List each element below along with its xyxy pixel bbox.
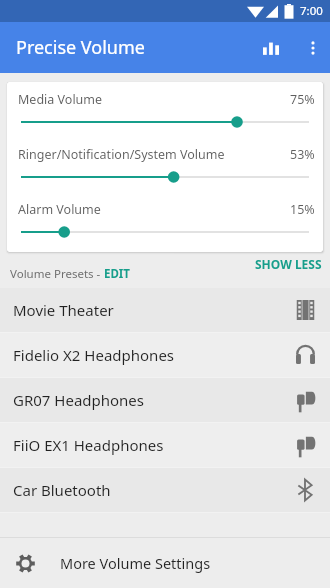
button[interactable]: More options xyxy=(293,28,330,68)
staticText: Media Volume xyxy=(18,91,290,108)
button[interactable]: Statistics xyxy=(249,26,293,70)
button[interactable]: EDIT xyxy=(104,266,130,282)
staticText: Ringer/Notification/System Volume xyxy=(18,146,290,163)
staticText: Movie Theater xyxy=(13,300,114,320)
staticText: Car Bluetooth xyxy=(13,480,111,500)
staticText: GR07 Headphones xyxy=(13,390,145,410)
staticText: 15% xyxy=(290,201,315,218)
button[interactable]: GR07 Headphones xyxy=(0,378,330,422)
button[interactable] xyxy=(21,170,309,184)
button[interactable]: Movie Theater xyxy=(0,288,330,332)
staticText: Volume Presets - xyxy=(10,266,104,282)
staticText: Precise Volume xyxy=(16,35,145,60)
button[interactable]: FiiO EX1 Headphones xyxy=(0,423,330,467)
staticText: Fidelio X2 Headphones xyxy=(13,345,175,365)
button[interactable]: SHOW LESS xyxy=(255,256,322,272)
staticText: 53% xyxy=(290,146,315,163)
staticText: Alarm Volume xyxy=(18,201,290,218)
staticText: 75% xyxy=(290,91,315,108)
button[interactable] xyxy=(21,115,309,129)
button[interactable]: Car Bluetooth xyxy=(0,468,330,512)
button[interactable]: More Volume Settings xyxy=(0,538,330,588)
staticText: More Volume Settings xyxy=(60,553,211,573)
button[interactable] xyxy=(21,225,309,239)
button[interactable]: Fidelio X2 Headphones xyxy=(0,333,330,377)
staticText: FiiO EX1 Headphones xyxy=(13,435,164,455)
staticText: 7:00 xyxy=(300,3,323,19)
